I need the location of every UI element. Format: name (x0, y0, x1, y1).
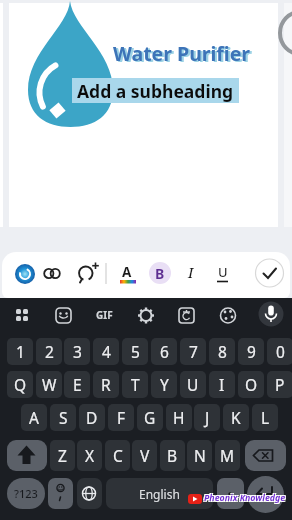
button[interactable]: 9 (238, 338, 264, 365)
staticText: English (139, 486, 180, 502)
button[interactable]: Y (151, 371, 177, 398)
button[interactable]: Q (7, 371, 33, 398)
button[interactable]: A (21, 404, 47, 431)
staticText: Pheonix Knowledge (203, 491, 285, 503)
button[interactable]: 5 (122, 338, 148, 365)
staticText: B (155, 264, 165, 283)
staticText: Add a subheading (77, 79, 234, 103)
button[interactable]: 3 (64, 338, 90, 365)
button[interactable]: L (252, 404, 278, 431)
button[interactable]: F (108, 404, 134, 431)
button[interactable]: X (77, 440, 102, 471)
staticText: D (86, 407, 98, 428)
button[interactable]: W (36, 371, 62, 398)
staticText: I (219, 374, 225, 395)
staticText: 9 (247, 341, 256, 362)
button[interactable]: 6 (151, 338, 177, 365)
button[interactable]: A (122, 263, 132, 281)
button[interactable]: H (166, 404, 192, 431)
button[interactable] (48, 478, 73, 509)
button[interactable]: K (223, 404, 249, 431)
button[interactable] (77, 478, 102, 509)
staticText: Water Purifier (115, 41, 253, 68)
staticText: Pheonix Knowledge (203, 493, 285, 505)
staticText: Z (58, 445, 67, 466)
staticText: Pheonix Knowledge (205, 491, 287, 503)
button[interactable]: E (64, 371, 90, 398)
staticText: U (187, 374, 199, 395)
button[interactable] (7, 440, 47, 471)
staticText: T (131, 374, 140, 395)
staticText: W (42, 374, 57, 395)
button[interactable]: P (267, 371, 292, 398)
button[interactable]: ?123 (7, 478, 45, 509)
staticText: N (194, 445, 206, 466)
button[interactable]: T (122, 371, 148, 398)
button[interactable] (15, 264, 35, 284)
button[interactable]: 8 (209, 338, 235, 365)
button[interactable]: M (215, 440, 240, 471)
staticText: L (261, 407, 270, 428)
button[interactable]: D (79, 404, 105, 431)
staticText: V (140, 445, 150, 466)
button[interactable] (217, 478, 244, 509)
button[interactable]: N (187, 440, 212, 471)
button[interactable]: English (106, 478, 213, 509)
button[interactable] (247, 476, 284, 513)
button[interactable]: V (132, 440, 157, 471)
staticText: A (29, 407, 39, 428)
staticText: C (113, 445, 123, 466)
button[interactable]: 1 (7, 338, 33, 365)
staticText: Y (160, 374, 169, 395)
staticText: M (220, 445, 235, 466)
staticText: 4 (102, 341, 111, 362)
button[interactable]: J (194, 404, 220, 431)
button[interactable]: 0 (267, 338, 292, 365)
staticText: P (275, 374, 285, 395)
button[interactable] (245, 440, 286, 471)
button[interactable]: U (180, 371, 206, 398)
button[interactable]: O (238, 371, 264, 398)
button[interactable]: B (160, 440, 185, 471)
button[interactable]: I (209, 371, 235, 398)
staticText: R (101, 374, 111, 395)
staticText: H (173, 407, 185, 428)
staticText: 0 (276, 341, 285, 362)
staticText: ?123 (14, 486, 38, 501)
staticText: 6 (160, 341, 169, 362)
staticText: Pheonix Knowledge (205, 493, 287, 505)
staticText: F (117, 407, 126, 428)
staticText: G (144, 407, 156, 428)
staticText: 8 (218, 341, 227, 362)
button[interactable]: 7 (180, 338, 206, 365)
staticText: 1 (16, 341, 25, 362)
button[interactable]: Add a subheading (72, 78, 239, 103)
button[interactable]: B (149, 262, 171, 284)
staticText: J (205, 407, 210, 428)
button[interactable]: U (218, 263, 228, 281)
button[interactable]: R (93, 371, 119, 398)
staticText: O (245, 374, 258, 395)
staticText: X (85, 445, 95, 466)
button[interactable]: C (105, 440, 130, 471)
staticText: Q (14, 374, 27, 395)
staticText: K (231, 407, 241, 428)
staticText: 2 (45, 341, 54, 362)
staticText: Water Purifier (113, 40, 251, 67)
staticText: S (59, 407, 68, 428)
staticText: B (167, 445, 178, 466)
button[interactable]: I (188, 263, 194, 282)
staticText: E (73, 374, 82, 395)
staticText: 5 (131, 341, 140, 362)
button[interactable]: 4 (93, 338, 119, 365)
staticText: 7 (189, 341, 198, 362)
button[interactable]: G (137, 404, 163, 431)
staticText: 3 (73, 341, 82, 362)
button[interactable]: Z (50, 440, 75, 471)
button[interactable]: 2 (36, 338, 62, 365)
button[interactable]: GIF (96, 308, 113, 322)
staticText: Pheonix Knowledge (204, 492, 286, 504)
button[interactable]: S (50, 404, 76, 431)
